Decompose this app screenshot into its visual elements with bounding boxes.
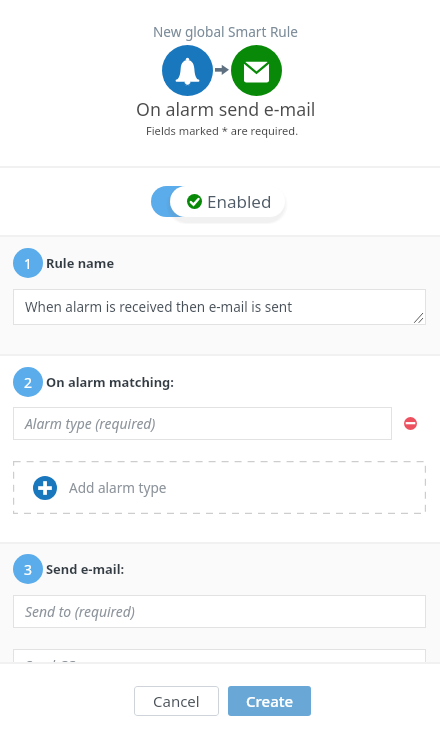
button[interactable]: Cancel bbox=[134, 686, 219, 716]
button[interactable]: Add alarm type bbox=[13, 461, 426, 514]
staticText: New global Smart Rule bbox=[153, 22, 298, 41]
staticText: 1 bbox=[24, 254, 33, 273]
staticText: Enabled bbox=[207, 190, 272, 213]
button[interactable]: Remove alarm type bbox=[404, 417, 417, 430]
staticText: Send e-mail: bbox=[46, 560, 125, 578]
button[interactable] bbox=[151, 186, 197, 217]
button[interactable]: Alarm type (required) bbox=[13, 407, 392, 440]
staticText: When alarm is received then e-mail is se… bbox=[25, 298, 293, 316]
staticText: Send to (required) bbox=[25, 602, 135, 621]
staticText: On alarm send e-mail bbox=[136, 97, 316, 121]
staticText: 3 bbox=[24, 560, 33, 579]
button[interactable]: When alarm is received then e-mail is se… bbox=[13, 289, 426, 325]
staticText: Fields marked * are required. bbox=[146, 123, 299, 138]
button[interactable]: Enabled bbox=[170, 186, 285, 217]
staticText: On alarm matching: bbox=[46, 373, 174, 391]
staticText: Cancel bbox=[153, 691, 200, 711]
staticText: Alarm type (required) bbox=[25, 414, 156, 433]
staticText: 2 bbox=[24, 373, 33, 392]
button[interactable]: Send to (required) bbox=[13, 595, 426, 628]
staticText: Rule name bbox=[46, 254, 115, 272]
button[interactable]: Create bbox=[228, 686, 311, 716]
button[interactable]: Send CC bbox=[13, 649, 426, 662]
staticText: Add alarm type bbox=[69, 478, 167, 497]
staticText: Send CC bbox=[25, 656, 75, 662]
staticText: Create bbox=[246, 691, 294, 711]
